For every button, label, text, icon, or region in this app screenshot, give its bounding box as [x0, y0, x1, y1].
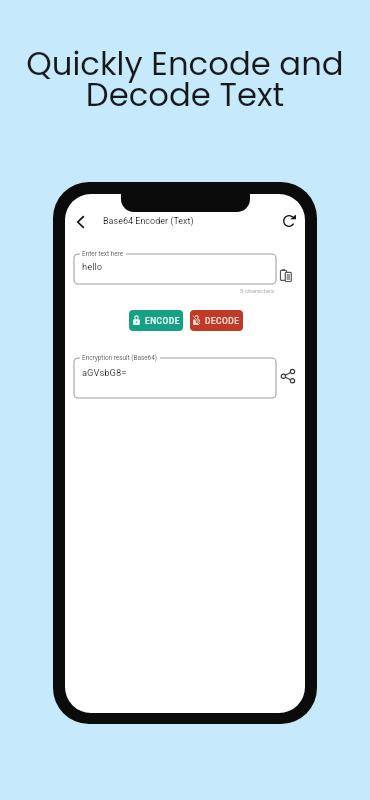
button[interactable]: Copy — [276, 265, 296, 285]
button[interactable]: Refresh — [277, 209, 301, 233]
staticText: Enter text here — [82, 250, 124, 258]
button[interactable]: DECODE — [190, 310, 243, 331]
button[interactable]: ENCODE — [129, 310, 183, 331]
button[interactable]: Share — [278, 366, 298, 386]
staticText: Base64 Encoder (Text) — [103, 216, 194, 227]
staticText: ENCODE — [145, 316, 180, 326]
staticText: DECODE — [205, 316, 240, 326]
staticText: aGVsbG8= — [82, 367, 127, 378]
staticText: Encryption result (Base64) — [82, 354, 158, 362]
staticText: hello — [82, 261, 103, 272]
button[interactable]: Back — [68, 210, 92, 234]
staticText: Quickly Encode and Decode Text — [0, 41, 370, 117]
staticText: 5 characters — [240, 287, 275, 294]
